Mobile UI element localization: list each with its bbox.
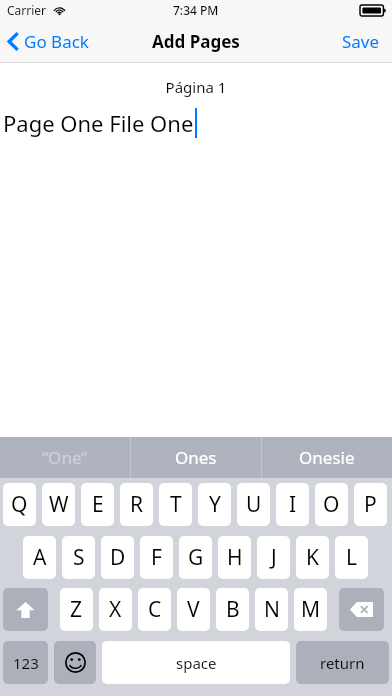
staticText: Page One File One	[3, 108, 194, 138]
button[interactable]: O	[315, 483, 348, 526]
button[interactable]: T	[159, 483, 192, 526]
button[interactable]: Save	[330, 22, 392, 61]
staticText: Carrier	[7, 2, 47, 18]
staticText: Add Pages	[152, 30, 240, 53]
button[interactable]: Go Back	[0, 24, 99, 59]
staticText: 7:34 PM	[173, 2, 219, 18]
staticText: F	[151, 543, 162, 572]
staticText: D	[110, 543, 126, 572]
button[interactable]: Q	[3, 483, 36, 526]
staticText: M	[301, 595, 321, 624]
button[interactable]: H	[218, 536, 251, 579]
staticText: Go Back	[24, 30, 89, 53]
button[interactable]: D	[101, 536, 134, 579]
button[interactable]: K	[296, 536, 329, 579]
staticText: Página 1	[0, 77, 392, 97]
button[interactable]: return	[296, 641, 389, 684]
staticText: Save	[342, 30, 380, 53]
button[interactable]: S	[62, 536, 95, 579]
button[interactable]: 123	[3, 641, 48, 684]
staticText: G	[188, 543, 204, 572]
button[interactable]: Backspace	[339, 588, 384, 631]
button[interactable]: U	[237, 483, 270, 526]
button[interactable]: A	[23, 536, 56, 579]
staticText: S	[73, 543, 85, 572]
staticText: N	[264, 595, 280, 624]
staticText: B	[226, 595, 240, 624]
staticText: Q	[11, 490, 28, 519]
button[interactable]: “One”	[0, 437, 130, 478]
staticText: Onesie	[299, 446, 355, 469]
button[interactable]: F	[140, 536, 173, 579]
staticText: A	[33, 543, 47, 572]
staticText: R	[130, 490, 144, 519]
button[interactable]: P	[354, 483, 387, 526]
staticText: “One”	[42, 446, 88, 469]
button[interactable]: Shift	[3, 588, 48, 631]
staticText: K	[306, 543, 319, 572]
button[interactable]: J	[257, 536, 290, 579]
button[interactable]: Onesie	[262, 437, 392, 478]
button[interactable]: Ones	[131, 437, 261, 478]
button[interactable]: Z	[60, 588, 93, 631]
button[interactable]: V	[177, 588, 210, 631]
button[interactable]: X	[99, 588, 132, 631]
staticText: U	[246, 490, 262, 519]
button[interactable]: G	[179, 536, 212, 579]
button[interactable]: C	[138, 588, 171, 631]
button[interactable]: R	[120, 483, 153, 526]
button[interactable]: Emoji keyboard	[54, 641, 96, 684]
staticText: I	[289, 490, 297, 519]
button[interactable]: Y	[198, 483, 231, 526]
button[interactable]: Page One File One	[0, 108, 392, 138]
staticText: Ones	[175, 446, 217, 469]
button[interactable]: W	[42, 483, 75, 526]
button[interactable]: L	[335, 536, 368, 579]
staticText: Y	[209, 490, 221, 519]
staticText: X	[109, 595, 122, 624]
staticText: Z	[70, 595, 83, 624]
staticText: T	[170, 490, 182, 519]
button[interactable]: B	[216, 588, 249, 631]
staticText: 123	[13, 653, 39, 673]
staticText: P	[364, 490, 377, 519]
staticText: space	[176, 653, 217, 673]
button[interactable]: M	[294, 588, 327, 631]
staticText: E	[92, 490, 104, 519]
button[interactable]: N	[255, 588, 288, 631]
button[interactable]: space	[102, 641, 290, 684]
staticText: V	[187, 595, 200, 624]
staticText: H	[227, 543, 243, 572]
staticText: C	[148, 595, 162, 624]
staticText: return	[320, 653, 365, 673]
button[interactable]: I	[276, 483, 309, 526]
staticText: W	[49, 490, 69, 519]
button[interactable]: E	[81, 483, 114, 526]
staticText: L	[346, 543, 358, 572]
staticText: J	[271, 543, 277, 572]
staticText: O	[323, 490, 340, 519]
